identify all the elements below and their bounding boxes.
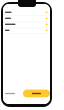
button[interactable] xyxy=(3,21,50,27)
button[interactable]: Continue xyxy=(23,89,50,97)
button[interactable] xyxy=(3,27,50,33)
button[interactable] xyxy=(3,15,50,21)
button[interactable] xyxy=(3,9,50,15)
